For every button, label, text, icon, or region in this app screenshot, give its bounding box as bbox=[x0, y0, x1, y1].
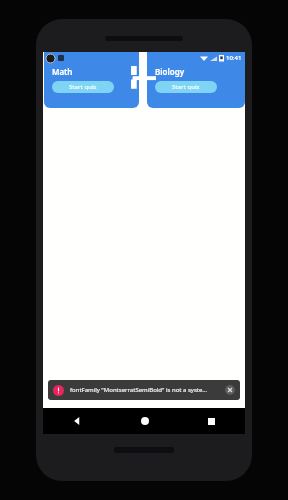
staticText: fontFamily "MontserratSemiBold" is not a… bbox=[70, 386, 221, 394]
button[interactable]: Math bbox=[44, 52, 139, 108]
button[interactable]: Recent apps bbox=[178, 408, 245, 434]
staticText: 10:41 bbox=[226, 54, 242, 62]
button[interactable]: Start quiz bbox=[155, 81, 217, 93]
staticText: Biology bbox=[155, 66, 185, 77]
button[interactable]: Biology bbox=[147, 52, 245, 108]
button[interactable]: Back bbox=[43, 408, 111, 434]
staticText: Math bbox=[52, 66, 73, 77]
button[interactable]: Home bbox=[111, 408, 178, 434]
other: Drag handle bbox=[130, 63, 156, 93]
button[interactable]: Start quiz bbox=[52, 81, 114, 93]
staticText: Start quiz bbox=[172, 83, 200, 91]
button[interactable]: fontFamily "MontserratSemiBold" is not a… bbox=[48, 380, 240, 400]
staticText: Start quiz bbox=[69, 83, 97, 91]
button[interactable]: Dismiss bbox=[225, 385, 235, 395]
